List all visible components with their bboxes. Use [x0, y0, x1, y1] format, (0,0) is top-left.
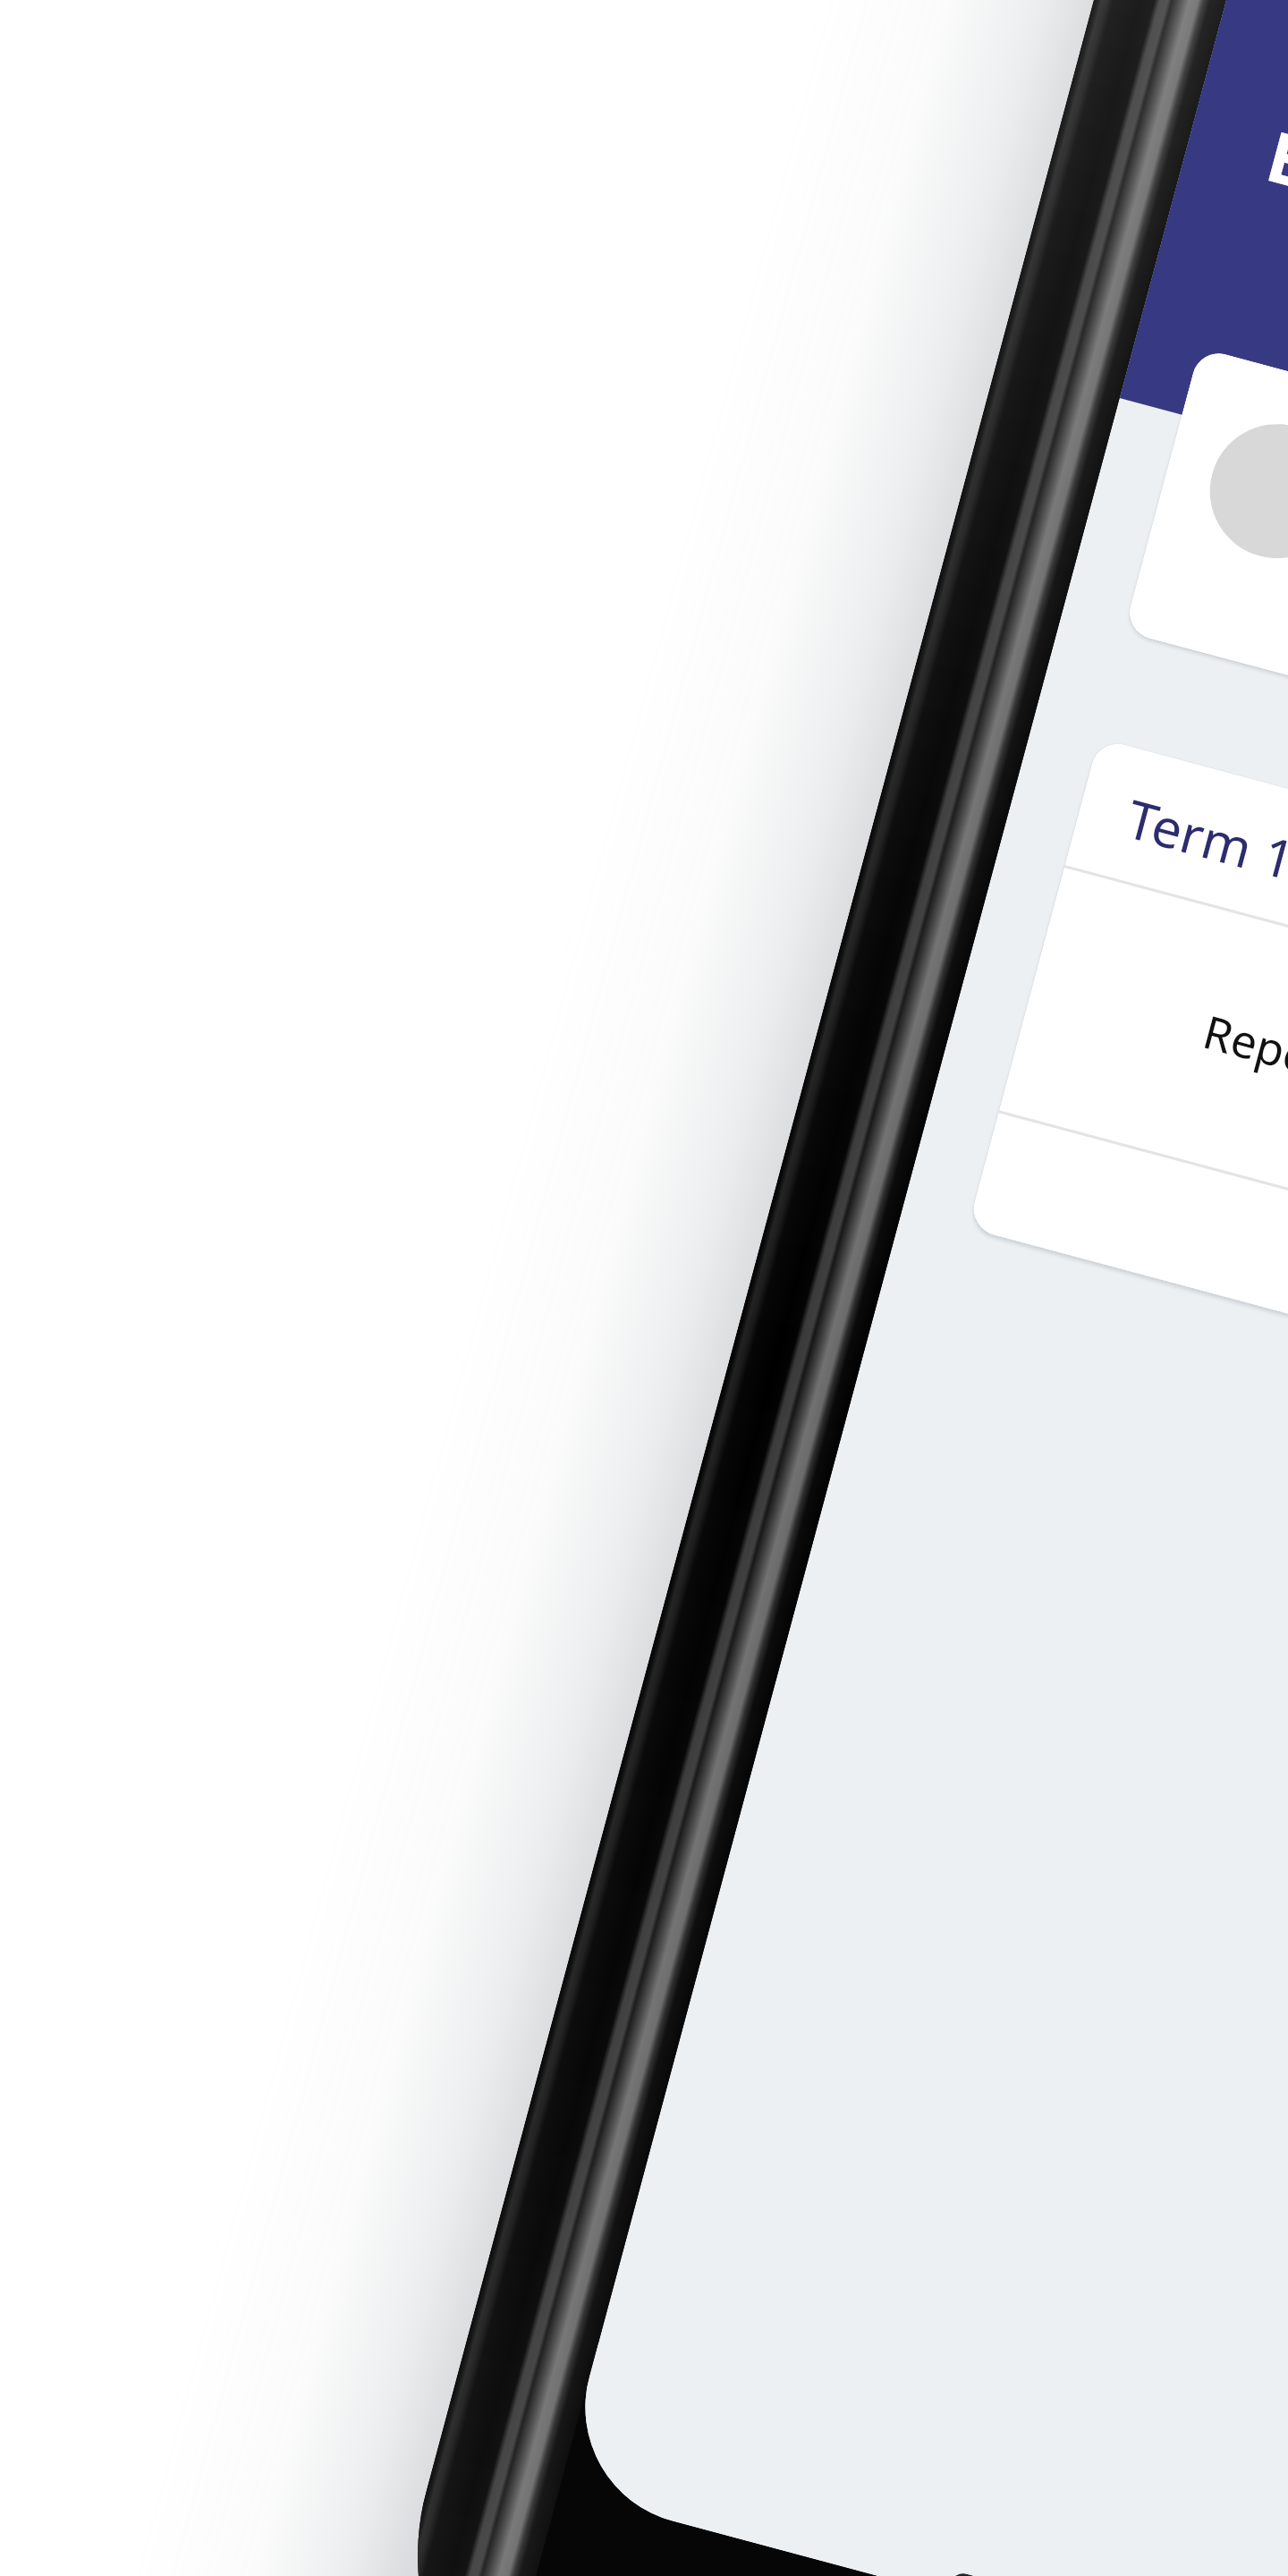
staticText: Edulink	[1257, 107, 1288, 266]
button[interactable]: Timetable	[867, 2426, 1215, 2576]
button[interactable]: Home	[559, 2344, 907, 2573]
staticText: Term 1	[1119, 782, 1288, 895]
other: Profile photo	[1195, 409, 1288, 573]
button[interactable]: Profile photo	[1124, 347, 1288, 929]
staticText: Report	[1197, 999, 1288, 1096]
button[interactable]: Report	[999, 868, 1288, 1406]
